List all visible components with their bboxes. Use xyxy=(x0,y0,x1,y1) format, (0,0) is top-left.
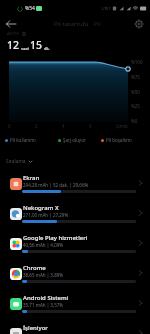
staticText: dk. xyxy=(44,46,50,51)
staticText: Şimdi xyxy=(116,123,128,129)
staticText: Chrome xyxy=(23,264,46,272)
staticText: 2 xyxy=(35,123,38,129)
staticText: 35,71 mAh | 3,57% xyxy=(23,302,64,308)
staticText: %54 xyxy=(25,5,35,12)
staticText: %75 xyxy=(131,74,140,80)
button[interactable]: Settings xyxy=(133,18,145,30)
staticText: Android Sistemi xyxy=(23,294,69,302)
staticText: Google Play hizmetleri xyxy=(23,234,88,242)
staticText: saat xyxy=(21,46,29,51)
staticText: Pil tasarrufu xyxy=(54,20,89,28)
staticText: 40,56 mAh | 4,09% xyxy=(23,242,64,248)
staticText: Ekran xyxy=(23,174,40,182)
staticText: 0 xyxy=(8,123,11,129)
staticText: 4 xyxy=(62,123,65,129)
button[interactable]: Back xyxy=(4,17,18,31)
staticText: Pil boşaltımı xyxy=(106,137,132,143)
staticText: %25 xyxy=(131,103,140,109)
button[interactable]: Chrome xyxy=(0,260,150,290)
staticText: Nekogram X xyxy=(23,204,59,212)
staticText: 15 xyxy=(30,38,43,52)
button[interactable]: Google Play hizmetleri xyxy=(0,230,150,260)
staticText: AKTİF xyxy=(7,31,20,37)
button[interactable]: İşleniyor xyxy=(0,320,150,334)
staticText: Pil kullanımı xyxy=(10,137,36,143)
button[interactable]: Sıralama xyxy=(6,154,150,168)
staticText: LTE1 xyxy=(102,6,111,11)
button[interactable]: Ekran xyxy=(0,170,150,200)
staticText: %50 xyxy=(131,89,140,95)
button[interactable]: Android Sistemi xyxy=(0,290,150,320)
staticText: İşleniyor xyxy=(23,324,48,332)
staticText: Sıralama xyxy=(6,158,26,165)
staticText: 271,00 mAh | 27,29% xyxy=(23,212,69,218)
staticText: %100 xyxy=(131,59,143,65)
staticText: Şarj oluyor xyxy=(63,137,86,143)
button[interactable]: Nekogram X xyxy=(0,200,150,230)
staticText: Pil xyxy=(94,20,101,28)
staticText: 294,28 mAh | 52 dak. | 29,66% xyxy=(23,182,89,188)
staticText: 12 xyxy=(7,38,20,52)
staticText: 6 xyxy=(89,123,92,129)
staticText: 38,65 mAh | 3,89% xyxy=(23,272,64,278)
staticText: %0 xyxy=(131,118,138,124)
